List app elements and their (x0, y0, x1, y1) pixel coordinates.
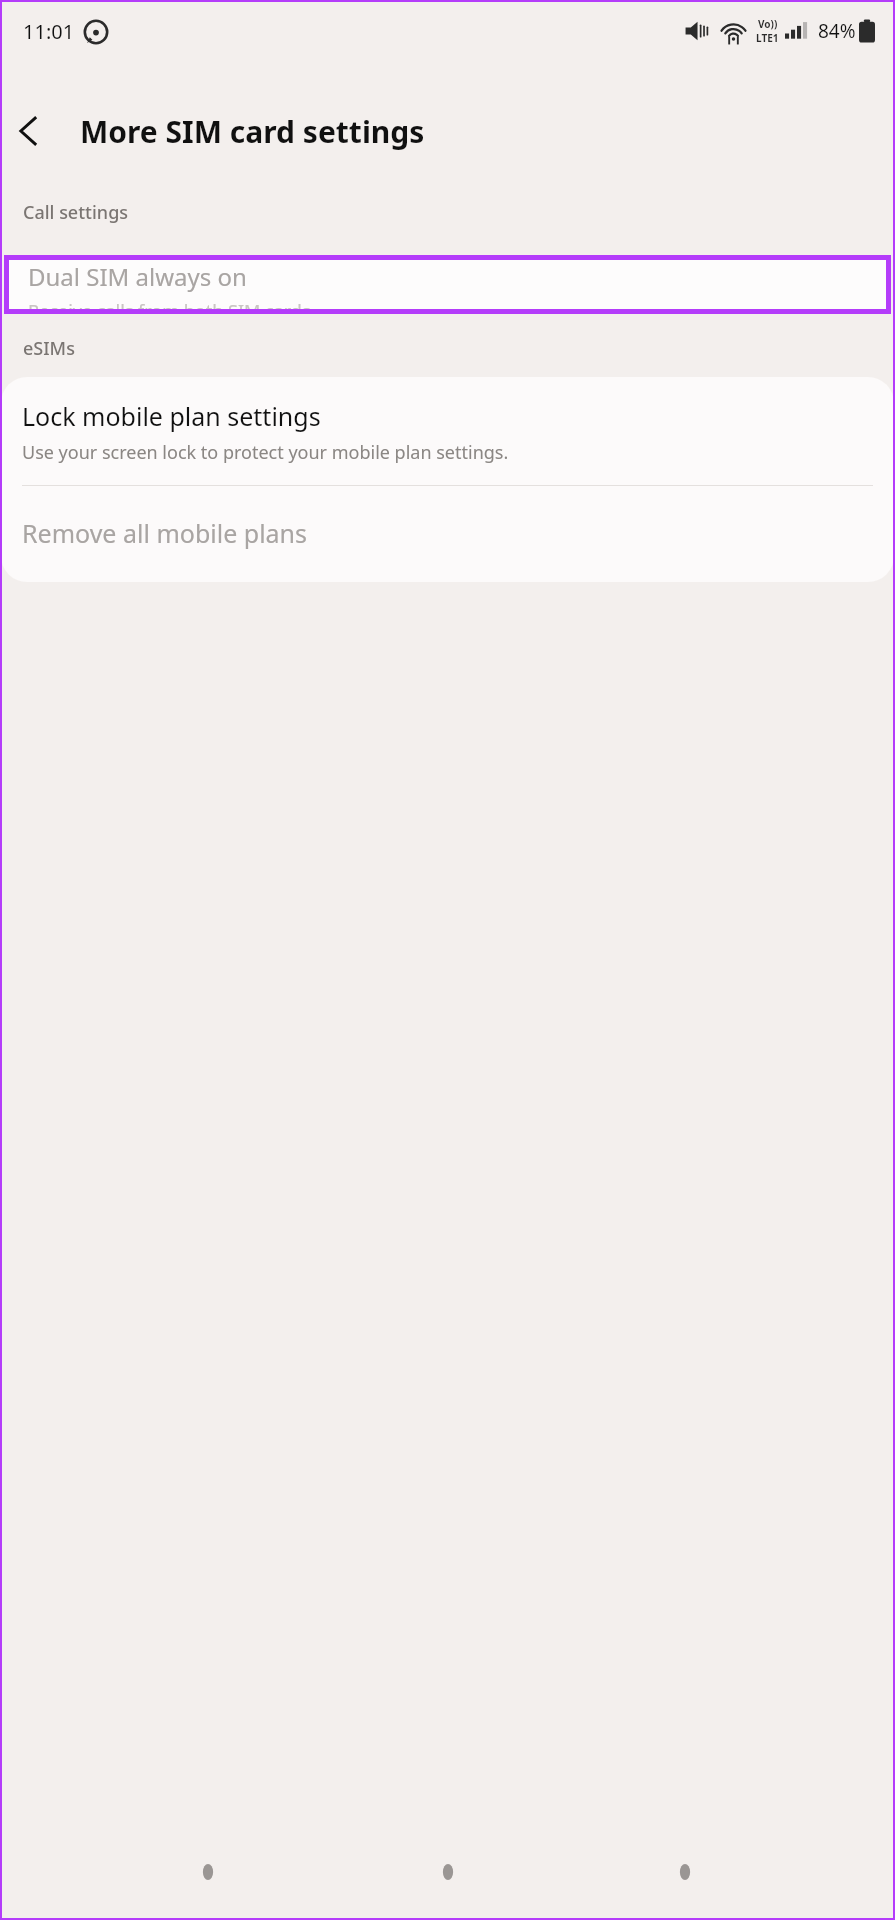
staticText: Call settings (23, 200, 129, 225)
staticText: Dual SIM always on (28, 260, 247, 293)
button[interactable]: Lock mobile plan settings (1, 377, 894, 485)
staticText: More SIM card settings (80, 111, 425, 152)
button[interactable]: Recents (186, 1850, 230, 1894)
staticText: Lock mobile plan settings (22, 399, 321, 433)
staticText: 84% (818, 18, 856, 44)
staticText: eSIMs (23, 336, 75, 361)
staticText: Remove all mobile plans (22, 516, 308, 550)
button[interactable]: Dual SIM always on (9, 260, 886, 309)
button[interactable]: Back (663, 1850, 707, 1894)
staticText: 11:01 (23, 18, 75, 45)
button[interactable]: Home (426, 1850, 470, 1894)
staticText: Use your screen lock to protect your mob… (22, 440, 509, 465)
staticText: Receive calls from both SIM cards. (28, 299, 316, 309)
button[interactable]: Navigate up (0, 102, 58, 160)
button[interactable]: Remove all mobile plans (1, 486, 894, 582)
staticText: LTE1 (756, 31, 779, 45)
staticText: Vo)) (758, 17, 778, 31)
